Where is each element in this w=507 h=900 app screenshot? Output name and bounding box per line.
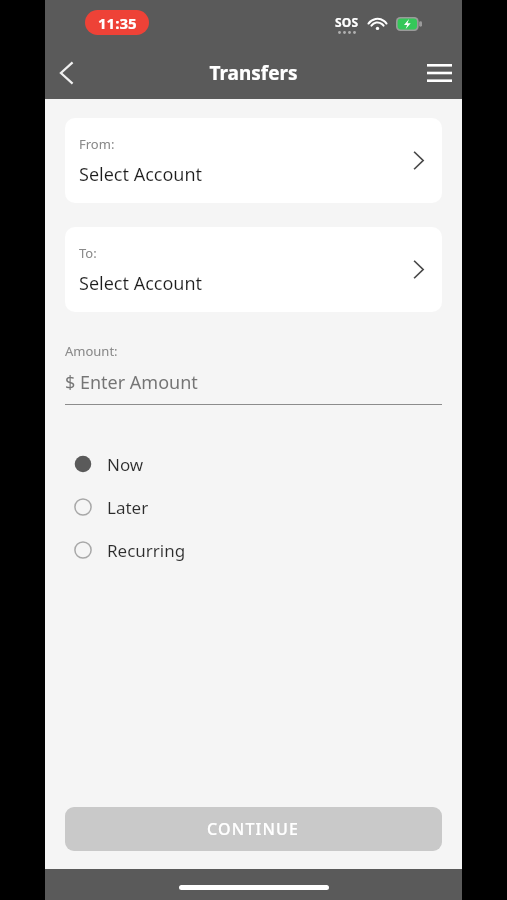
button[interactable]: Menu [416,50,462,96]
staticText: Transfers [209,60,298,86]
staticText: $ Enter Amount [65,370,198,395]
button[interactable]: From: [65,118,442,203]
staticText: Amount: [65,342,118,360]
button[interactable]: Now [65,452,462,476]
button[interactable]: Later [65,495,462,519]
button[interactable]: To: [65,227,442,312]
staticText: 11:35 [98,13,137,33]
button[interactable]: Back [45,51,89,95]
staticText: To: [79,244,97,262]
button[interactable]: CONTINUE [65,807,442,851]
staticText: Select Account [79,162,203,187]
staticText: Select Account [79,271,203,296]
staticText: Recurring [107,539,186,562]
button[interactable]: $ Enter Amount [65,370,442,395]
button[interactable]: Recurring [65,538,462,562]
staticText: Now [107,453,144,476]
staticText: From: [79,135,115,153]
staticText: CONTINUE [207,818,300,840]
staticText: Later [107,496,149,519]
staticText: SOS [335,14,359,30]
